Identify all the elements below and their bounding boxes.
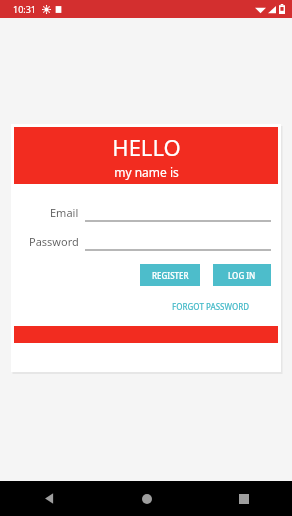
staticText: REGISTER	[152, 270, 189, 281]
button[interactable]: Email	[21, 204, 271, 221]
button[interactable]: FORGOT PASSWORD	[169, 298, 253, 315]
button[interactable]: REGISTER	[140, 264, 200, 286]
staticText: Password	[29, 234, 79, 249]
staticText: FORGOT PASSWORD	[172, 301, 250, 312]
staticText: my name is	[114, 164, 179, 180]
button[interactable]: Back	[0, 481, 98, 516]
button[interactable]: Recent apps	[195, 481, 292, 516]
button[interactable]: Home	[98, 481, 195, 516]
staticText: LOG IN	[228, 270, 256, 281]
button[interactable]: Password	[21, 233, 271, 250]
staticText: HELLO	[112, 132, 181, 162]
button[interactable]: LOG IN	[213, 264, 271, 286]
staticText: Email	[50, 205, 79, 220]
staticText: 10:31	[13, 3, 37, 15]
